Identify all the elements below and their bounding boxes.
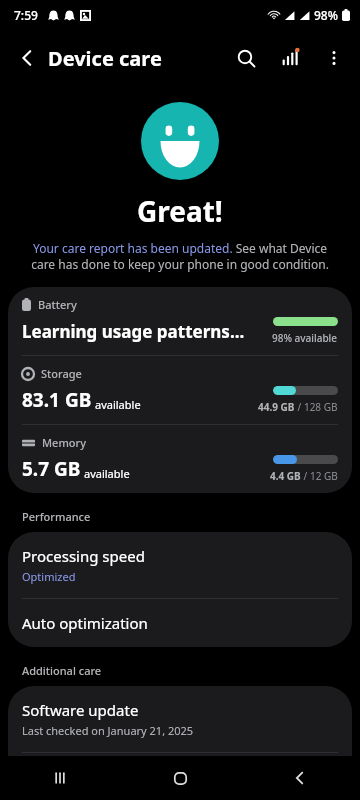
button[interactable]: Search — [224, 36, 268, 80]
button[interactable]: Usage statistics — [268, 36, 312, 80]
staticText: Performance — [22, 509, 91, 524]
button[interactable]: Back — [6, 37, 48, 79]
staticText: / 128 GB — [295, 400, 338, 414]
staticText: Device care — [48, 45, 162, 72]
staticText: Optimized — [22, 569, 76, 584]
button[interactable]: Software update — [8, 686, 352, 752]
staticText: 98% available — [272, 331, 338, 345]
button[interactable]: Recents — [0, 756, 120, 800]
staticText: 98% — [314, 7, 338, 23]
staticText: 5.7 GB — [22, 456, 81, 482]
button[interactable]: Back — [240, 756, 360, 800]
button[interactable]: Memory — [8, 425, 352, 493]
staticText: Software update — [22, 700, 139, 720]
staticText: Auto optimization — [22, 613, 148, 633]
staticText: 4.4 GB — [270, 469, 301, 483]
staticText: Processing speed — [22, 546, 145, 566]
staticText: Memory — [42, 435, 87, 450]
staticText: Last checked on January 21, 2025 — [22, 723, 194, 738]
staticText: Learning usage patterns... — [22, 320, 245, 343]
button[interactable]: Auto optimization — [8, 599, 352, 647]
staticText: 83.1 GB — [22, 387, 92, 413]
staticText: Additional care — [22, 663, 102, 678]
button[interactable]: More options — [312, 36, 356, 80]
staticText: available — [95, 397, 141, 412]
staticText: Diagnostics — [22, 767, 104, 786]
button[interactable]: Battery — [8, 287, 352, 355]
staticText: Storage — [41, 366, 82, 381]
button[interactable]: Home — [120, 756, 240, 800]
staticText: 44.9 GB — [258, 400, 295, 414]
staticText: Great! — [137, 192, 223, 230]
button[interactable]: Diagnostics — [8, 753, 352, 800]
staticText: Battery — [38, 297, 77, 312]
button[interactable]: Storage — [8, 356, 352, 424]
staticText: / 12 GB — [301, 469, 338, 483]
button[interactable]: Processing speed — [8, 532, 352, 598]
staticText: 7:59 — [14, 7, 38, 23]
staticText: available — [84, 466, 130, 481]
staticText: Your care report has been updated. See w… — [22, 240, 338, 273]
